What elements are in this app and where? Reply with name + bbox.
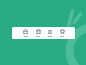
button[interactable]: More	[56, 27, 68, 39]
button[interactable]: Home	[19, 27, 32, 39]
button[interactable]: Documents	[44, 27, 56, 39]
button[interactable]: Bank	[32, 27, 44, 39]
